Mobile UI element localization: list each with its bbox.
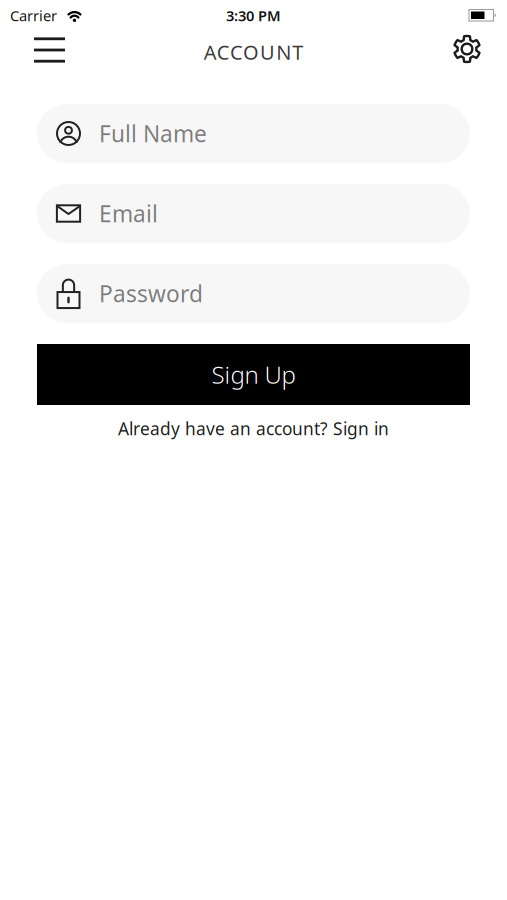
button[interactable]: Email <box>37 184 470 243</box>
button[interactable]: Menu <box>0 37 65 63</box>
button[interactable]: Sign Up <box>37 344 470 405</box>
button[interactable]: Already have an account? Sign in <box>118 417 389 440</box>
button[interactable]: Settings <box>453 36 507 64</box>
staticText: Password <box>99 278 203 308</box>
staticText: ACCOUNT <box>204 39 303 65</box>
staticText: Email <box>99 198 158 228</box>
staticText: Already have an account? Sign in <box>118 417 389 440</box>
staticText: 3:30 PM <box>226 6 281 25</box>
button[interactable]: Full Name <box>37 104 470 163</box>
staticText: Sign Up <box>211 359 295 390</box>
staticText: Full Name <box>99 118 207 148</box>
staticText: Carrier <box>10 6 57 25</box>
button[interactable]: Password <box>37 264 470 323</box>
